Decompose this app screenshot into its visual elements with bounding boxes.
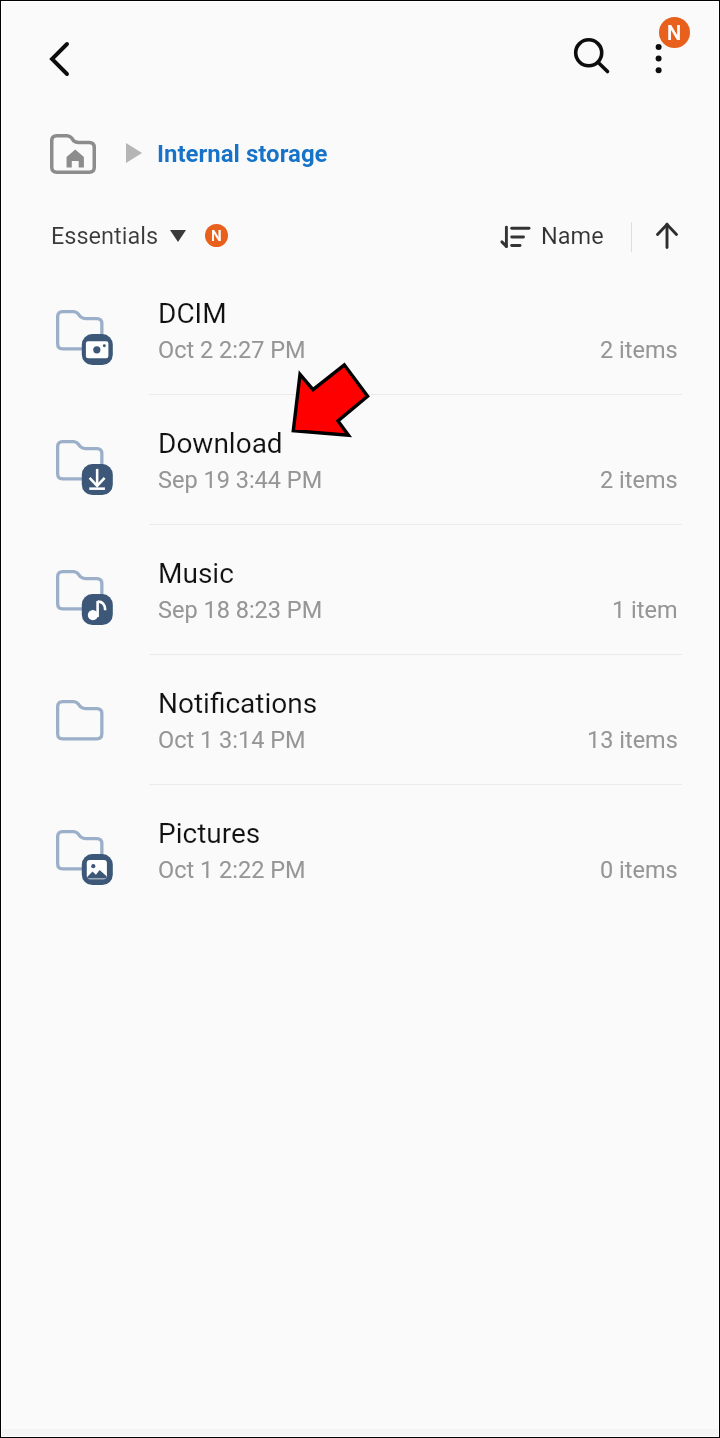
button[interactable]: Internal storage — [157, 136, 328, 172]
staticText: Download — [158, 427, 283, 460]
staticText: Music — [158, 557, 234, 590]
staticText: Internal storage — [157, 140, 328, 168]
staticText: 0 items — [600, 856, 678, 884]
button[interactable]: Search — [561, 25, 617, 81]
button[interactable]: Notifications — [2, 656, 718, 786]
staticText: Notifications — [158, 687, 318, 720]
staticText: 2 items — [600, 466, 678, 494]
staticText: Oct 1 2:22 PM — [158, 856, 306, 884]
staticText: 1 item — [612, 596, 678, 624]
staticText: Sep 19 3:44 PM — [158, 466, 323, 494]
button[interactable]: DCIM — [2, 266, 718, 396]
button[interactable]: Sort ascending — [645, 214, 689, 258]
button[interactable]: Download — [2, 396, 718, 526]
staticText: Oct 2 2:27 PM — [158, 336, 306, 364]
button[interactable]: Music — [2, 526, 718, 656]
staticText: Name — [541, 222, 604, 250]
staticText: Oct 1 3:14 PM — [158, 726, 306, 754]
button[interactable]: More options — [635, 28, 687, 80]
button[interactable]: Home folder — [50, 134, 96, 174]
staticText: Essentials — [51, 222, 159, 250]
staticText: 13 items — [587, 726, 678, 754]
button[interactable]: Navigate up — [24, 31, 80, 87]
staticText: N — [667, 21, 682, 44]
staticText: Sep 18 8:23 PM — [158, 596, 323, 624]
button[interactable]: Pictures — [2, 786, 718, 916]
button[interactable]: Essentials — [43, 215, 199, 257]
staticText: Pictures — [158, 817, 261, 850]
button[interactable]: Name — [492, 212, 610, 260]
staticText: N — [211, 227, 222, 245]
staticText: 2 items — [600, 336, 678, 364]
staticText: DCIM — [158, 297, 227, 330]
